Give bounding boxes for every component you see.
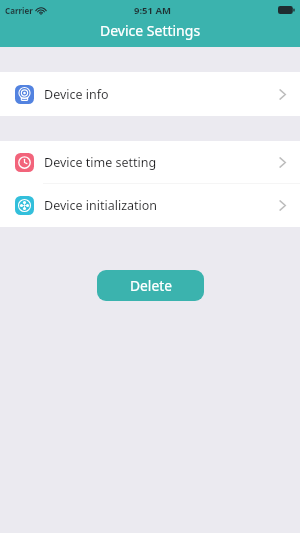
staticText: Delete bbox=[130, 276, 172, 295]
button[interactable]: Device time setting bbox=[0, 141, 300, 184]
staticText: Device Settings bbox=[100, 21, 201, 40]
button[interactable]: Device info bbox=[0, 72, 300, 116]
staticText: Carrier bbox=[5, 5, 33, 16]
button[interactable]: Device initialization bbox=[0, 184, 300, 227]
staticText: Device time setting bbox=[44, 154, 157, 171]
staticText: 9:51 AM bbox=[134, 4, 171, 17]
staticText: Device initialization bbox=[44, 197, 158, 214]
other: Battery full bbox=[278, 6, 295, 14]
button[interactable]: Delete bbox=[97, 270, 204, 301]
staticText: Device info bbox=[44, 86, 109, 103]
